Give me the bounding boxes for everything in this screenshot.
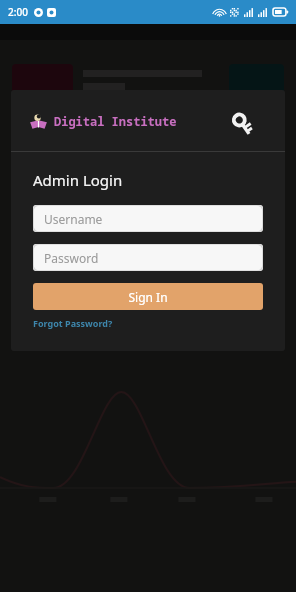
staticText: Admin Login [33,170,123,190]
button[interactable]: Key [227,101,267,141]
staticText: Sign In [128,289,168,305]
staticText: 2:00 [8,5,28,19]
staticText: Digital Institute [54,113,177,129]
button[interactable]: Forgot Password? [33,317,113,329]
button[interactable]: Sign In [33,283,263,310]
staticText: Forgot Password? [33,317,113,329]
staticText: Username [44,211,103,227]
button[interactable]: Username [33,205,263,232]
staticText: Password [44,250,99,266]
button[interactable]: Password [33,244,263,271]
